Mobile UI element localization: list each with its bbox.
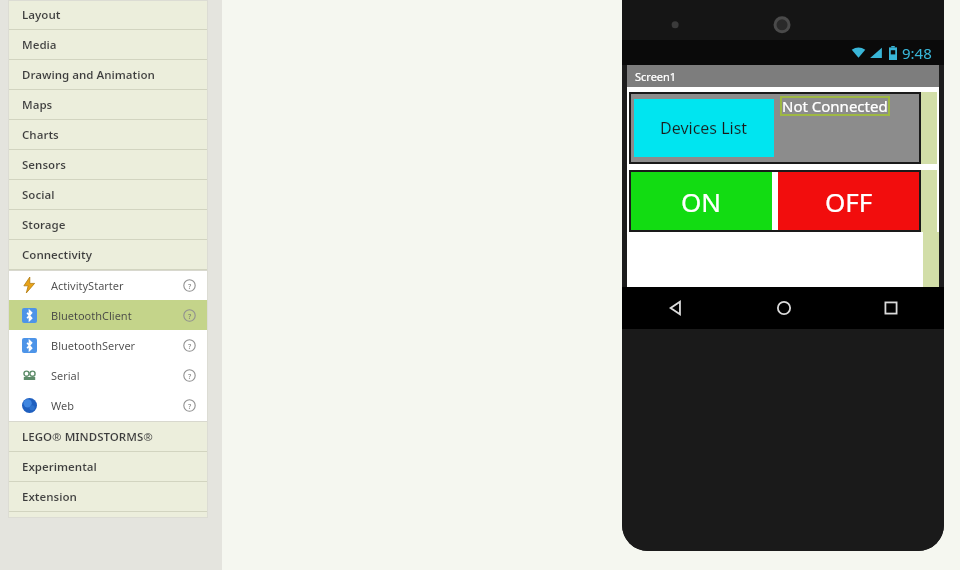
button[interactable]: LEGO® MINDSTORMS® (8, 422, 208, 452)
button[interactable]: Not Connected (780, 96, 890, 116)
button[interactable]: Connectivity (8, 240, 208, 270)
button[interactable]: Drawing and Animation (8, 60, 208, 90)
staticText: Media (22, 37, 57, 53)
staticText: BluetoothClient (51, 308, 132, 323)
button[interactable]: Help (183, 279, 196, 292)
button[interactable]: Home (730, 287, 837, 329)
staticText: Devices List (660, 117, 748, 139)
button[interactable]: Storage (8, 210, 208, 240)
button[interactable]: Experimental (8, 452, 208, 482)
staticText: Not Connected (782, 96, 888, 116)
button[interactable]: Sensors (8, 150, 208, 180)
button[interactable]: Social (8, 180, 208, 210)
button[interactable]: ON (630, 171, 772, 231)
button[interactable]: OFF (778, 171, 920, 231)
button[interactable]: BluetoothClient (8, 300, 208, 330)
staticText: Web (51, 398, 74, 413)
staticText: Screen1 (635, 69, 677, 84)
staticText: Sensors (22, 157, 66, 173)
button[interactable]: Devices List (634, 99, 774, 157)
staticText: Experimental (22, 459, 97, 475)
staticText: Serial (51, 368, 80, 383)
button[interactable]: ActivityStarter (8, 270, 208, 300)
staticText: Storage (22, 217, 66, 233)
staticText: Charts (22, 127, 59, 143)
button[interactable]: BluetoothClient1 (845, 324, 907, 379)
staticText: Drawing and Animation (22, 67, 155, 83)
button[interactable]: Extension (8, 482, 208, 512)
button[interactable]: Help (183, 399, 196, 412)
button[interactable]: Charts (8, 120, 208, 150)
button[interactable]: Back (622, 287, 730, 329)
staticText: Social (22, 187, 55, 203)
staticText: ON (681, 184, 722, 219)
button[interactable]: Recent apps (837, 287, 944, 329)
button[interactable]: Serial (8, 360, 208, 390)
button[interactable]: Media (8, 30, 208, 60)
staticText: ? (188, 401, 192, 411)
staticText: ? (188, 341, 192, 351)
staticText: ? (188, 311, 192, 321)
button[interactable]: BluetoothServer (8, 330, 208, 360)
staticText: ActivityStarter (51, 278, 124, 293)
button[interactable]: Maps (8, 90, 208, 120)
button[interactable]: Web (8, 390, 208, 420)
staticText: LEGO® MINDSTORMS® (22, 429, 153, 445)
button[interactable]: Layout (8, 0, 208, 30)
button[interactable]: Help (183, 309, 196, 322)
button[interactable]: Help (183, 339, 196, 352)
staticText: Maps (22, 97, 53, 113)
staticText: OFF (825, 184, 873, 219)
staticText: ? (188, 371, 192, 381)
staticText: ? (188, 281, 192, 291)
staticText: Extension (22, 489, 77, 505)
staticText: Layout (22, 7, 61, 23)
staticText: Connectivity (22, 247, 93, 263)
staticText: 9:48 (902, 43, 932, 63)
button[interactable]: Help (183, 369, 196, 382)
staticText: BluetoothServer (51, 338, 136, 353)
